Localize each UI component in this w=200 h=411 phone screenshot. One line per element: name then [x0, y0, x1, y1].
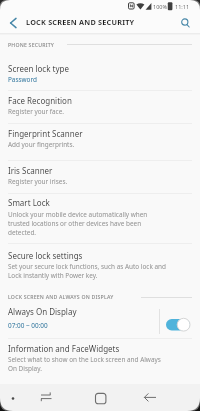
button[interactable] [0, 14, 24, 34]
staticText: Iris Scanner [8, 165, 53, 176]
staticText: Set your secure lock functions, such as … [8, 262, 166, 280]
staticText: Password [8, 75, 37, 84]
staticText: Fingerprint Scanner [8, 128, 83, 139]
staticText: 100% [153, 3, 168, 10]
staticText: Register your face. [8, 107, 64, 116]
staticText: Smart Lock [8, 197, 50, 208]
button[interactable] [0, 124, 200, 161]
staticText: Face Recognition [8, 95, 72, 106]
button[interactable] [0, 339, 200, 377]
staticText: Always On Display [8, 306, 77, 317]
button[interactable] [128, 384, 172, 411]
staticText: 11:11 [175, 3, 190, 10]
button[interactable] [0, 91, 200, 124]
button[interactable] [0, 54, 200, 91]
staticText: Unlock your mobile device automatically … [8, 210, 148, 237]
button[interactable] [78, 384, 122, 411]
button[interactable] [174, 14, 200, 34]
staticText: LOCK SCREEN AND SECURITY [26, 17, 135, 27]
button[interactable] [25, 384, 69, 411]
staticText: Add your fingerprints. [8, 140, 75, 149]
button[interactable] [0, 244, 200, 288]
staticText: Secure lock settings [8, 250, 83, 261]
button[interactable] [0, 302, 200, 339]
button[interactable] [0, 161, 200, 194]
button[interactable] [164, 317, 192, 333]
staticText: Information and FaceWidgets [8, 343, 120, 354]
staticText: 07:00 ~ 00:00 [8, 321, 48, 330]
staticText: LOCK SCREEN AND ALWAYS ON DISPLAY [8, 293, 114, 300]
staticText: Select what to show on the Lock screen a… [8, 355, 161, 373]
staticText: PHONE SECURITY [8, 41, 55, 48]
button[interactable] [0, 194, 200, 244]
staticText: Screen lock type [8, 63, 69, 74]
staticText: Register your irises. [8, 177, 68, 186]
